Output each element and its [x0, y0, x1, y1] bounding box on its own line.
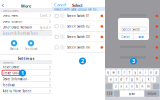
staticText: Cancel	[106, 26, 109, 48]
staticText: Screen Switch 02	[67, 25, 90, 28]
staticText: 2	[81, 57, 84, 65]
button[interactable]: f	[124, 76, 129, 82]
button[interactable]: h	[135, 76, 140, 82]
staticText: Conference Room 1	[40, 14, 48, 32]
staticText: Screen Switch 03	[67, 35, 90, 39]
staticText: GENERAL	[2, 61, 13, 64]
button[interactable]: w	[111, 69, 116, 75]
button[interactable]: i	[143, 69, 148, 75]
button[interactable]: Create Group	[0, 70, 52, 76]
staticText: Device Information	[2, 77, 27, 81]
button[interactable]: Cancel	[118, 34, 133, 40]
button[interactable]: d	[119, 76, 124, 82]
staticText: More	[21, 3, 31, 8]
button[interactable]: Screen Switch 04	[52, 42, 105, 53]
staticText: q	[107, 71, 109, 74]
button[interactable]: Key	[106, 83, 112, 89]
staticText: g	[131, 78, 133, 81]
button[interactable]: Feedback	[0, 82, 52, 88]
button[interactable]: o	[149, 69, 153, 75]
staticText: Devices with same group can be controlle…	[54, 8, 97, 15]
staticText: e	[118, 71, 120, 74]
staticText: return	[147, 92, 156, 95]
staticText: Support & Feedback Tools	[2, 32, 37, 35]
staticText: Feedback	[25, 47, 37, 51]
staticText: k	[148, 78, 149, 81]
staticText: Manual	[9, 47, 18, 51]
button[interactable]: l	[151, 76, 156, 82]
button[interactable]: Manual	[7, 40, 20, 52]
button[interactable]: m	[145, 83, 150, 89]
button[interactable]: return	[145, 90, 159, 97]
staticText: DEVICE INFO	[2, 9, 18, 13]
button[interactable]: 123	[106, 90, 113, 97]
button[interactable]: g	[130, 76, 134, 82]
staticText: Create Group	[2, 71, 21, 75]
staticText: b	[136, 85, 138, 88]
staticText: Screen Switch 04	[67, 46, 90, 49]
staticText: c	[126, 85, 127, 88]
button[interactable]: Screen Switch 03	[52, 32, 105, 42]
staticText: h	[136, 78, 138, 81]
staticText: u	[139, 71, 141, 74]
button[interactable]: t	[127, 69, 132, 75]
button[interactable]: y	[132, 69, 137, 75]
button[interactable]: a	[108, 76, 113, 82]
button[interactable]: s	[113, 76, 118, 82]
staticText: Settings	[17, 56, 34, 61]
button[interactable]: e	[116, 69, 121, 75]
staticText: j	[142, 78, 143, 81]
staticText: s	[115, 78, 116, 81]
staticText: Confirm	[157, 25, 160, 49]
button[interactable]: Key	[153, 83, 159, 89]
staticText: Select Source	[72, 2, 85, 13]
button[interactable]: space	[120, 90, 144, 97]
button[interactable]: Other Device Network	[0, 24, 52, 30]
button[interactable]: q	[106, 69, 110, 75]
staticText: n	[142, 85, 144, 88]
staticText: Screen Switch 01	[67, 14, 90, 18]
button[interactable]: Device Name	[0, 12, 52, 18]
button[interactable]: p	[154, 69, 159, 75]
staticText: l	[153, 78, 154, 81]
staticText: 1	[21, 69, 24, 77]
button[interactable]: v	[129, 83, 134, 89]
button[interactable]: z	[113, 83, 118, 89]
button[interactable]: c	[124, 83, 129, 89]
staticText: Reset Device	[2, 65, 19, 69]
button[interactable]: k	[146, 76, 151, 82]
staticText: m	[147, 85, 149, 88]
button[interactable]: b	[135, 83, 140, 89]
staticText: a	[110, 78, 111, 81]
button[interactable]: j	[140, 76, 145, 82]
staticText: w	[112, 71, 114, 74]
button[interactable]: Save	[134, 34, 149, 40]
button[interactable]: Device Information	[0, 76, 52, 82]
staticText: 3	[132, 57, 135, 65]
button[interactable]: x	[119, 83, 123, 89]
staticText: z	[115, 85, 116, 88]
button[interactable]: n	[140, 83, 145, 89]
staticText: Device Name	[2, 14, 18, 17]
staticText: Cancel	[54, 2, 66, 7]
button[interactable]: Device Location	[0, 18, 52, 24]
button[interactable]: Feedback	[24, 40, 37, 52]
button[interactable]: Cancel	[54, 3, 68, 7]
button[interactable]: Key	[114, 90, 119, 97]
button[interactable]: Add to Home Screen	[0, 88, 52, 94]
staticText: Save	[138, 35, 144, 39]
staticText: Device Location	[2, 20, 22, 23]
staticText: t	[129, 71, 130, 74]
button[interactable]: Screen Switch 01	[52, 11, 105, 21]
staticText: Other Device Network	[2, 26, 31, 29]
staticText: x	[120, 85, 121, 88]
staticText: Screen Switch	[122, 28, 140, 31]
button[interactable]: Reset Device	[0, 64, 52, 70]
staticText: o	[150, 71, 152, 74]
button[interactable]: u	[138, 69, 143, 75]
staticText: p	[155, 71, 157, 74]
staticText: Feedback	[2, 83, 14, 87]
button[interactable]: Screen Switch 02	[52, 21, 105, 32]
button[interactable]: r	[122, 69, 127, 75]
